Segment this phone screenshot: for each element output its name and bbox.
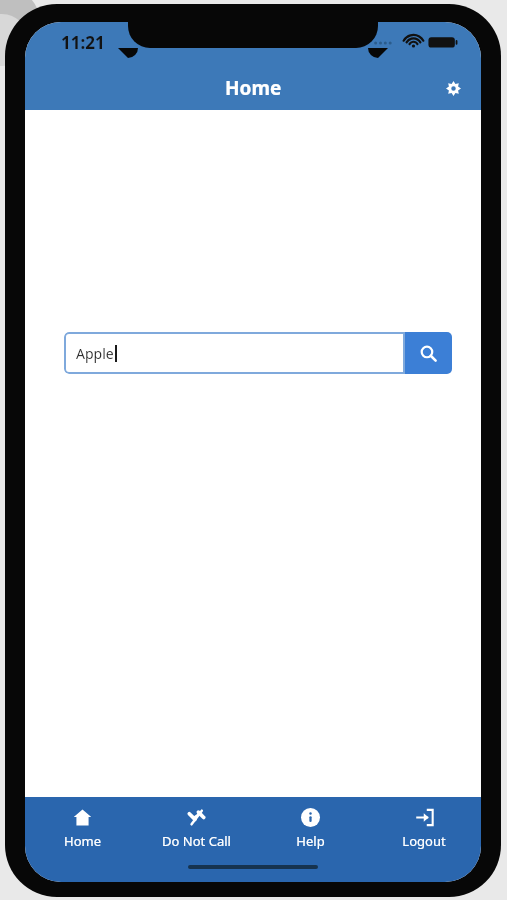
staticText: Logout — [402, 832, 446, 850]
button[interactable]: Settings — [433, 68, 473, 108]
button[interactable]: Home — [25, 797, 139, 860]
button[interactable]: Do Not Call — [139, 797, 253, 860]
staticText: Do Not Call — [162, 832, 231, 850]
staticText: Apple — [76, 344, 114, 363]
staticText: Help — [296, 832, 325, 850]
button[interactable]: Search — [405, 332, 452, 374]
button[interactable]: Apple — [64, 332, 405, 374]
staticText: Home — [225, 75, 282, 101]
staticText: Home — [64, 832, 101, 850]
button[interactable]: Logout — [367, 797, 481, 860]
button[interactable]: Help — [253, 797, 367, 860]
staticText: 11:21 — [61, 31, 105, 54]
